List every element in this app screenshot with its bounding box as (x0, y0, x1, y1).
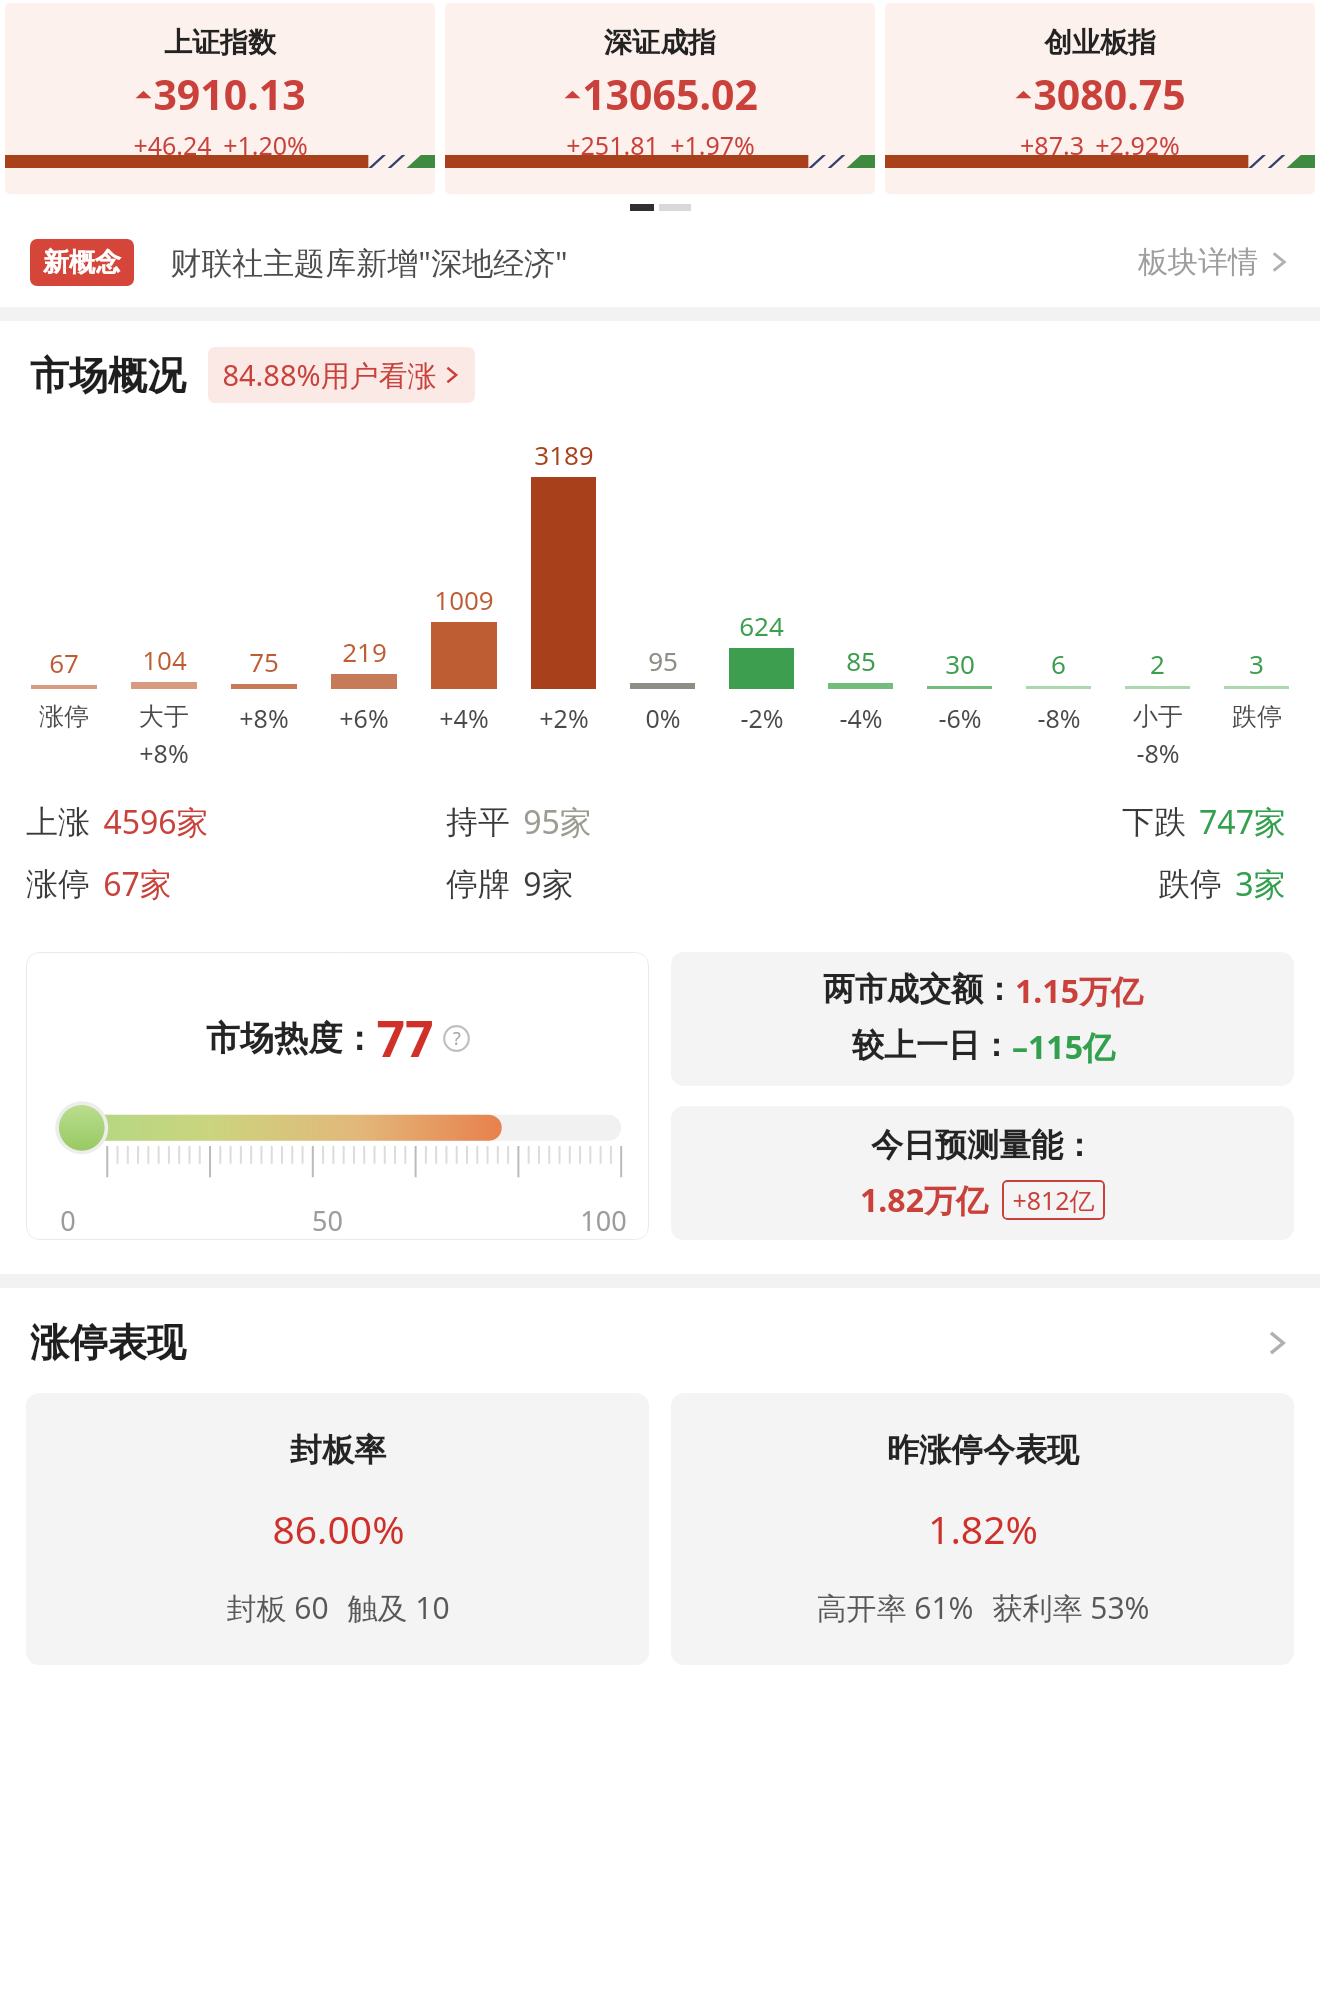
other: Help about market heat (443, 1025, 470, 1052)
staticText: 85 (846, 643, 876, 678)
staticText: 50 (312, 1202, 343, 1239)
staticText: 停牌 (446, 864, 510, 904)
staticText: 新概念 (43, 246, 121, 279)
staticText: ? (453, 1026, 461, 1051)
staticText: 深证成指 (604, 25, 716, 60)
staticText: 75 (249, 644, 279, 679)
staticText: 30 (945, 646, 975, 681)
button[interactable]: 市场热度： (26, 952, 649, 1240)
staticText: 大于 (139, 701, 189, 732)
staticText: 触及 10 (347, 1587, 450, 1628)
staticText: 95家 (523, 800, 592, 844)
staticText: 67 (49, 645, 79, 680)
staticText: 84.88%用户看涨 (222, 355, 437, 395)
staticText: 3080.75 (1033, 66, 1186, 122)
staticText: 104 (142, 642, 187, 677)
button[interactable]: 昨涨停今表现 (671, 1393, 1294, 1665)
button[interactable]: 新概念 (0, 225, 1320, 299)
staticText: 创业板指 (1044, 25, 1156, 60)
staticText: 高开率 61% (816, 1587, 974, 1628)
staticText: +46.24 (133, 128, 212, 162)
staticText: 获利率 53% (992, 1587, 1150, 1628)
staticText: 上涨 (26, 802, 90, 842)
staticText: 涨停 (39, 701, 89, 732)
staticText: 涨停表现 (30, 1318, 186, 1367)
staticText: 100 (580, 1202, 627, 1239)
staticText: 4596家 (103, 800, 209, 844)
staticText: 1.82万亿 (860, 1178, 988, 1222)
staticText: 0% (645, 701, 681, 735)
staticText: -8% (1037, 701, 1081, 735)
staticText: +4% (439, 701, 489, 735)
staticText: 219 (342, 634, 387, 669)
staticText: 封板率 (290, 1430, 386, 1470)
staticText: 13065.02 (582, 66, 758, 122)
staticText: -4% (839, 701, 883, 735)
staticText: 持平 (446, 802, 510, 842)
staticText: 624 (739, 608, 784, 643)
staticText: 市场热度： (206, 1017, 376, 1060)
button[interactable]: 深证成指 (445, 3, 875, 194)
button[interactable]: 封板率 (26, 1393, 649, 1665)
staticText: 86.00% (272, 1502, 405, 1555)
staticText: 两市成交额： (823, 969, 1015, 1009)
button[interactable]: 两市成交额： (671, 952, 1294, 1086)
staticText: 跌停 (1232, 701, 1282, 732)
staticText: 财联社主题库新增"深地经济" (170, 241, 568, 283)
staticText: 跌停 (1158, 864, 1222, 904)
staticText: +1.97% (670, 128, 755, 162)
staticText: 涨停 (26, 864, 90, 904)
staticText: 上证指数 (164, 25, 276, 60)
staticText: 6 (1051, 646, 1066, 681)
staticText: 下跌 (1122, 802, 1186, 842)
staticText: +6% (339, 701, 389, 735)
staticText: +251.81 (566, 128, 659, 162)
staticText: +8% (139, 736, 189, 770)
staticText: +2% (539, 701, 589, 735)
staticText: 9家 (523, 862, 574, 906)
staticText: 95 (648, 643, 678, 678)
staticText: 1.82% (928, 1502, 1038, 1555)
staticText: 较上一日： (852, 1025, 1012, 1065)
button[interactable]: 今日预测量能： (671, 1106, 1294, 1240)
staticText: 1.15万亿 (1015, 969, 1143, 1013)
staticText: 3家 (1235, 862, 1286, 906)
staticText: -6% (938, 701, 982, 735)
staticText: 77 (376, 1004, 434, 1072)
staticText: -2% (740, 701, 784, 735)
staticText: 3 (1249, 646, 1264, 681)
staticText: 3189 (534, 437, 594, 472)
staticText: 67家 (103, 862, 172, 906)
button[interactable]: 创业板指 (885, 3, 1315, 194)
staticText: +87.3 (1020, 128, 1084, 162)
staticText: +8% (239, 701, 289, 735)
staticText: 2 (1150, 646, 1165, 681)
button[interactable]: 84.88%用户看涨 (208, 347, 475, 403)
staticText: 昨涨停今表现 (887, 1430, 1079, 1470)
staticText: 0 (60, 1202, 76, 1239)
staticText: 封板 60 (226, 1587, 329, 1628)
button[interactable]: 涨停表现 (0, 1318, 1320, 1367)
staticText: 市场概况 (30, 351, 186, 400)
staticText: 板块详情 (1138, 243, 1258, 281)
staticText: 3910.13 (153, 66, 306, 122)
button[interactable]: 上证指数 (5, 3, 435, 194)
staticText: 747家 (1199, 800, 1286, 844)
staticText: 小于 (1133, 701, 1183, 732)
staticText: 今日预测量能： (871, 1125, 1095, 1165)
staticText: +2.92% (1095, 128, 1180, 162)
staticText: –115亿 (1012, 1025, 1115, 1069)
staticText: +812亿 (1012, 1183, 1095, 1217)
staticText: -8% (1136, 736, 1180, 770)
staticText: +1.20% (223, 128, 308, 162)
staticText: 1009 (434, 582, 494, 617)
